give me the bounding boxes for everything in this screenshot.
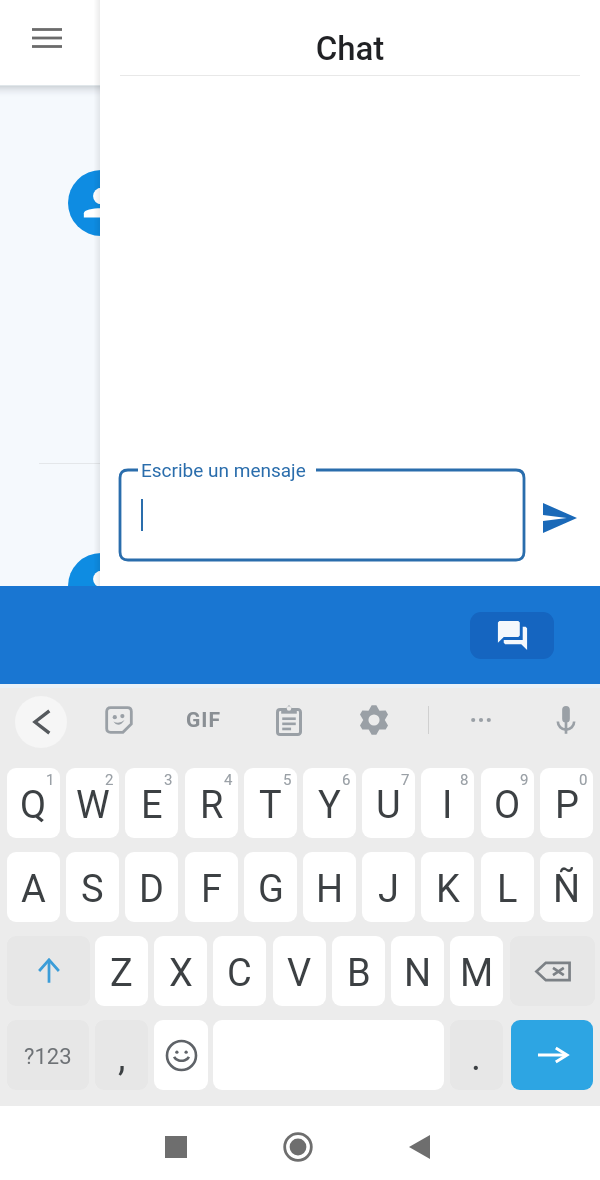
- staticText: S: [81, 867, 104, 912]
- button[interactable]: R: [185, 768, 238, 838]
- staticText: 8: [460, 771, 469, 789]
- staticText: 6: [342, 771, 351, 789]
- button[interactable]: Stickers: [97, 698, 141, 742]
- button[interactable]: [7, 936, 90, 1006]
- staticText: B: [347, 951, 371, 996]
- button[interactable]: Home: [278, 1127, 318, 1167]
- button[interactable]: C: [213, 936, 266, 1006]
- button[interactable]: X: [154, 936, 207, 1006]
- staticText: X: [169, 951, 193, 996]
- staticText: Y: [318, 783, 341, 828]
- staticText: 0: [579, 771, 588, 789]
- button[interactable]: T: [244, 768, 297, 838]
- button[interactable]: Back: [399, 1127, 439, 1167]
- button[interactable]: V: [273, 936, 326, 1006]
- button[interactable]: W: [66, 768, 119, 838]
- button[interactable]: Settings: [352, 698, 396, 742]
- staticText: 2: [105, 771, 114, 789]
- staticText: ,: [118, 1035, 126, 1080]
- staticText: 7: [401, 771, 410, 789]
- button[interactable]: H: [303, 852, 356, 922]
- button[interactable]: Q: [7, 768, 60, 838]
- button[interactable]: G: [244, 852, 297, 922]
- staticText: U: [376, 783, 401, 828]
- button[interactable]: Menu: [17, 8, 77, 68]
- button[interactable]: Recents: [156, 1127, 196, 1167]
- button[interactable]: O: [481, 768, 534, 838]
- button[interactable]: Clipboard: [267, 698, 311, 742]
- staticText: M: [460, 951, 494, 996]
- button[interactable]: L: [481, 852, 534, 922]
- staticText: V: [287, 951, 312, 996]
- staticText: 4: [224, 771, 233, 789]
- staticText: K: [436, 867, 460, 912]
- button[interactable]: B: [332, 936, 385, 1006]
- button[interactable]: [511, 1020, 593, 1090]
- button[interactable]: E: [125, 768, 178, 838]
- button[interactable]: F: [185, 852, 238, 922]
- button[interactable]: Back: [15, 696, 67, 748]
- button[interactable]: K: [421, 852, 474, 922]
- button[interactable]: [154, 1020, 208, 1090]
- button[interactable]: S: [66, 852, 119, 922]
- button[interactable]: Chats: [470, 612, 554, 659]
- button[interactable]: [510, 936, 595, 1006]
- staticText: 1: [46, 771, 55, 789]
- staticText: 5: [283, 771, 292, 789]
- button[interactable]: GIF: [177, 698, 229, 742]
- staticText: ?123: [24, 1044, 72, 1070]
- button[interactable]: ,: [95, 1020, 148, 1090]
- button[interactable]: P: [540, 768, 593, 838]
- staticText: Escribe un mensaje: [141, 459, 306, 481]
- button[interactable]: A: [7, 852, 60, 922]
- button[interactable]: Send: [530, 488, 590, 548]
- staticText: W: [76, 783, 110, 828]
- staticText: Q: [20, 783, 47, 828]
- button[interactable]: I: [421, 768, 474, 838]
- staticText: L: [497, 867, 518, 912]
- staticText: G: [258, 867, 284, 912]
- button[interactable]: U: [362, 768, 415, 838]
- staticText: I: [442, 783, 453, 828]
- staticText: J: [378, 867, 399, 912]
- staticText: C: [227, 951, 252, 996]
- button[interactable]: Voice input: [544, 698, 588, 742]
- button[interactable]: Z: [95, 936, 148, 1006]
- button[interactable]: D: [125, 852, 178, 922]
- staticText: Chat: [100, 29, 600, 68]
- staticText: H: [316, 867, 344, 912]
- button[interactable]: J: [362, 852, 415, 922]
- staticText: R: [200, 783, 224, 828]
- staticText: F: [201, 867, 223, 912]
- staticText: GIF: [186, 708, 221, 733]
- button[interactable]: M: [450, 936, 503, 1006]
- staticText: N: [404, 951, 432, 996]
- staticText: A: [21, 867, 46, 912]
- staticText: .: [471, 1035, 482, 1080]
- button[interactable]: More options: [459, 698, 503, 742]
- staticText: E: [141, 783, 163, 828]
- button[interactable]: .: [450, 1020, 503, 1090]
- staticText: D: [139, 867, 164, 912]
- button[interactable]: N: [391, 936, 444, 1006]
- button[interactable]: Ñ: [540, 852, 593, 922]
- staticText: Z: [110, 951, 133, 996]
- staticText: Ñ: [553, 867, 581, 912]
- staticText: O: [494, 783, 521, 828]
- staticText: P: [555, 783, 579, 828]
- staticText: 3: [164, 771, 173, 789]
- button[interactable]: Y: [303, 768, 356, 838]
- button[interactable]: ?123: [7, 1020, 89, 1090]
- staticText: T: [259, 783, 282, 828]
- staticText: 9: [520, 771, 529, 789]
